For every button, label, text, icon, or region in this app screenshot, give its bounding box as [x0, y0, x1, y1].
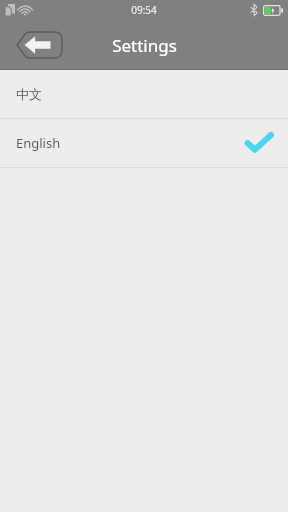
staticText: Settings [112, 34, 177, 57]
staticText: 09:54 [131, 3, 157, 17]
staticText: 中文 [16, 86, 42, 102]
button[interactable]: Back [14, 32, 62, 58]
staticText: English [16, 134, 61, 152]
button[interactable]: 中文 [0, 70, 288, 118]
button[interactable]: English [0, 119, 288, 167]
